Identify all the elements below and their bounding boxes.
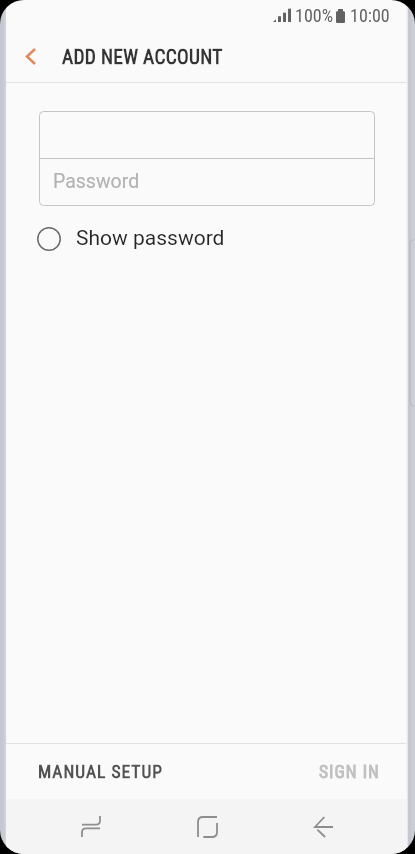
button[interactable]: Back	[268, 799, 380, 854]
button[interactable]: SIGN IN	[293, 744, 406, 799]
staticText: Show password	[76, 226, 225, 251]
button[interactable]: MANUAL SETUP	[6, 744, 195, 799]
staticText: Password	[53, 170, 140, 193]
button[interactable]: Navigate up	[6, 31, 56, 82]
button[interactable]	[39, 111, 375, 158]
button[interactable]: Password	[39, 158, 375, 205]
staticText: 100%	[295, 5, 334, 26]
staticText: ADD NEW ACCOUNT	[62, 46, 223, 69]
button[interactable]: Show password	[35, 222, 233, 255]
button[interactable]: Home	[151, 799, 263, 854]
staticText: SIGN IN	[319, 762, 380, 783]
button[interactable]: Recent apps	[35, 799, 147, 854]
staticText: 10:00	[350, 5, 390, 26]
staticText: MANUAL SETUP	[38, 762, 163, 783]
